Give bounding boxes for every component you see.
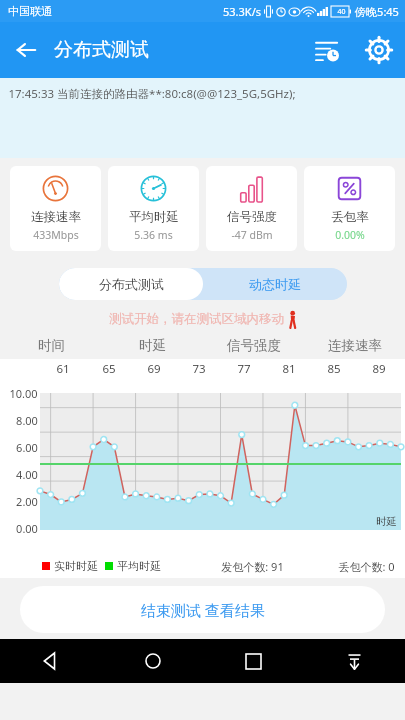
staticText: 傍晚5:45 (355, 4, 399, 19)
staticText: 实时时延 (54, 559, 98, 573)
staticText: 77 (237, 361, 251, 377)
staticText: 连接速率 (31, 209, 81, 225)
staticText: -47 dBm (231, 228, 273, 242)
staticText: 2.00 (16, 494, 38, 509)
staticText: 6.00 (16, 440, 38, 455)
staticText: 分布式测试 (54, 38, 149, 62)
button[interactable]: Back (0, 639, 102, 683)
button[interactable]: 连接速率 (10, 166, 101, 251)
staticText: 73 (192, 361, 206, 377)
staticText: 433Mbps (33, 228, 79, 242)
staticText: 0.00% (335, 228, 365, 242)
button[interactable]: History (301, 24, 353, 76)
button[interactable]: 结束测试 查看结果 (20, 586, 385, 633)
staticText: 69 (147, 361, 161, 377)
staticText: 61 (56, 361, 70, 377)
staticText: 时间 (38, 337, 65, 354)
staticText: 信号强度 (227, 209, 277, 225)
button[interactable]: 动态时延 (203, 268, 347, 300)
staticText: 中国联通 (8, 4, 52, 18)
button[interactable]: Settings (353, 24, 405, 76)
staticText: 10.00 (9, 386, 38, 401)
staticText: 平均时延 (129, 209, 179, 225)
button[interactable]: Home (102, 639, 203, 683)
button[interactable]: Back (0, 24, 52, 76)
staticText: 分布式测试 (99, 276, 164, 292)
staticText: 平均时延 (117, 559, 161, 573)
staticText: 测试开始，请在测试区域内移动 (109, 311, 284, 327)
button[interactable]: 分布式测试 (59, 268, 203, 300)
staticText: 5.36 ms (134, 228, 173, 242)
staticText: 8.00 (16, 413, 38, 428)
staticText: 40 (337, 7, 346, 17)
staticText: 65 (102, 361, 116, 377)
staticText: 17:45:33 当前连接的路由器**:80:c8(@@123_5G,5GHz)… (8, 86, 296, 102)
button[interactable]: 信号强度 (206, 166, 297, 251)
button[interactable]: 平均时延 (108, 166, 199, 251)
staticText: 0.00 (16, 521, 38, 536)
staticText: 信号强度 (227, 337, 281, 354)
staticText: 4.00 (16, 467, 38, 482)
button[interactable]: Recents (203, 639, 304, 683)
staticText: 时延 (376, 515, 397, 528)
staticText: 发包个数: 91 (221, 559, 284, 574)
staticText: 85 (327, 361, 341, 377)
staticText: 丢包个数: 0 (338, 559, 395, 574)
staticText: 结束测试 查看结果 (141, 600, 265, 620)
staticText: 时延 (139, 337, 166, 354)
button[interactable]: Downloads (304, 639, 405, 683)
staticText: 89 (372, 361, 386, 377)
staticText: 动态时延 (249, 276, 301, 292)
staticText: 53.3K/s (223, 4, 261, 19)
button[interactable]: 丢包率 (304, 166, 395, 251)
staticText: 连接速率 (328, 337, 382, 354)
staticText: 丢包率 (331, 209, 369, 225)
staticText: 81 (282, 361, 296, 377)
